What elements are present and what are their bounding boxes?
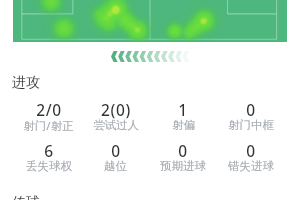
staticText: 进攻 xyxy=(12,74,40,92)
button[interactable]: 2(0) xyxy=(82,99,149,133)
staticText: 0 xyxy=(178,140,188,161)
button[interactable]: 进攻 xyxy=(12,74,40,92)
staticText: 射门/射正 xyxy=(23,118,74,131)
staticText: 丢失球权 xyxy=(26,159,72,172)
button[interactable]: 2/0 xyxy=(15,99,82,133)
staticText: 1 xyxy=(178,99,188,120)
button[interactable]: 6 xyxy=(15,140,82,174)
staticText: 0 xyxy=(246,140,256,161)
staticText: 传球 xyxy=(12,194,40,200)
button[interactable]: 1 xyxy=(149,99,217,133)
button[interactable]: 0 xyxy=(149,140,217,174)
button[interactable]: 0 xyxy=(217,99,285,133)
staticText: 预期进球 xyxy=(160,159,206,172)
staticText: 错失进球 xyxy=(228,159,274,172)
staticText: 2/0 xyxy=(36,99,62,120)
staticText: 越位 xyxy=(104,159,127,172)
button[interactable]: 传球 xyxy=(12,194,40,200)
staticText: 尝试过人 xyxy=(93,118,139,131)
staticText: 0 xyxy=(246,99,256,120)
staticText: 2(0) xyxy=(101,99,131,120)
staticText: 射偏 xyxy=(172,118,195,131)
button[interactable]: 0 xyxy=(217,140,285,174)
staticText: 射门中框 xyxy=(228,118,274,131)
button[interactable]: 0 xyxy=(82,140,149,174)
staticText: 0 xyxy=(111,140,121,161)
staticText: 6 xyxy=(44,140,54,161)
